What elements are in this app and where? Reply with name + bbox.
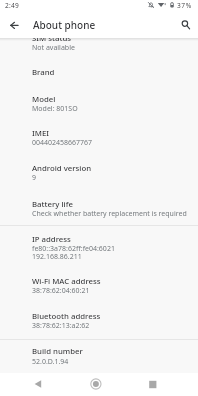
- button[interactable]: Wi-Fi MAC address: [0, 268, 198, 303]
- button[interactable]: Home: [80, 373, 112, 396]
- staticText: Bluetooth address: [32, 311, 101, 322]
- staticText: Android version: [32, 163, 92, 174]
- button[interactable]: Search: [173, 14, 197, 38]
- staticText: 38:78:62:04:60:21: [32, 286, 90, 296]
- staticText: SIM status: [32, 33, 72, 44]
- staticText: Model: [32, 94, 56, 105]
- staticText: IP address: [32, 234, 71, 245]
- button[interactable]: SIM status: [0, 38, 198, 67]
- staticText: About phone: [33, 18, 96, 32]
- staticText: Build number: [32, 346, 83, 357]
- staticText: Not available: [32, 43, 75, 53]
- button[interactable]: Brand: [0, 67, 198, 94]
- staticText: Model: 801SO: [32, 104, 78, 114]
- staticText: 37%: [177, 1, 192, 10]
- button[interactable]: Recents: [137, 373, 169, 396]
- staticText: 38:78:62:13:a2:62: [32, 321, 90, 331]
- staticText: Brand: [32, 67, 55, 78]
- staticText: 52.0.D.1.94: [32, 357, 69, 367]
- staticText: IMEI: [32, 128, 50, 139]
- button[interactable]: Android version: [0, 163, 198, 198]
- button[interactable]: Back: [22, 373, 54, 396]
- button[interactable]: Model: [0, 94, 198, 129]
- button[interactable]: Bluetooth address: [0, 303, 198, 340]
- staticText: Wi-Fi MAC address: [32, 276, 101, 287]
- button[interactable]: IMEI: [0, 128, 198, 163]
- button[interactable]: Back: [2, 14, 26, 38]
- staticText: Check whether battery replacement is req…: [32, 209, 187, 219]
- staticText: 9: [32, 173, 37, 183]
- button[interactable]: Battery life: [0, 199, 198, 225]
- staticText: 2:49: [5, 1, 19, 10]
- staticText: 004402458667767: [32, 138, 93, 148]
- button[interactable]: Build number: [0, 340, 198, 373]
- staticText: fe80::3a78:62ff:fe04:6021: [32, 244, 115, 254]
- button[interactable]: IP address: [0, 226, 198, 268]
- staticText: 192.168.86.211: [32, 252, 82, 262]
- staticText: Battery life: [32, 199, 73, 210]
